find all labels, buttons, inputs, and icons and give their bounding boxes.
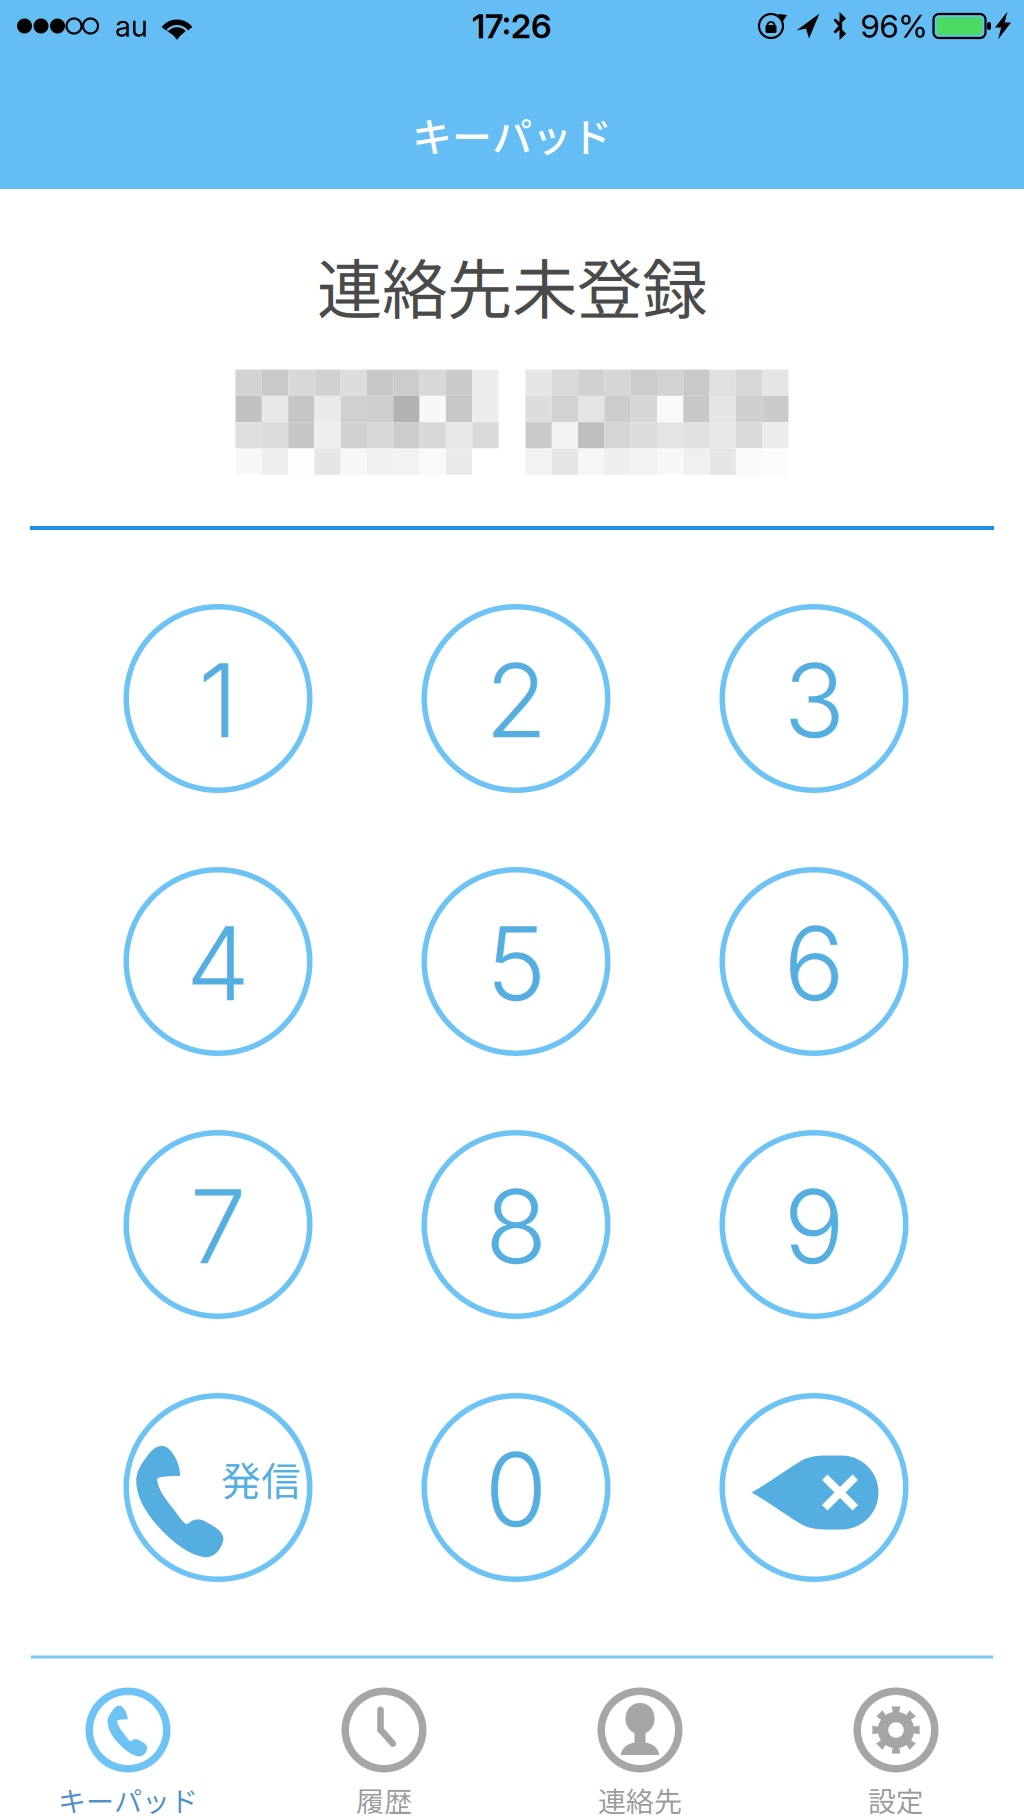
staticText: 6 (783, 902, 844, 1025)
staticText: キーパッド (58, 1779, 198, 1820)
staticText: 設定 (868, 1779, 924, 1820)
button[interactable]: 0 (421, 1393, 610, 1582)
button[interactable]: 削除 (719, 1393, 908, 1582)
staticText: 8 (485, 1165, 547, 1288)
staticText: 2 (485, 639, 547, 762)
staticText: 3 (783, 639, 844, 762)
button[interactable]: 履歴 (256, 1658, 512, 1820)
staticText: 連絡先未登録 (317, 238, 707, 333)
staticText: 5 (486, 902, 546, 1025)
staticText: 9 (783, 1165, 844, 1288)
button[interactable]: 1 (123, 604, 312, 793)
staticText: 96% (860, 7, 927, 45)
staticText: 発信 (221, 1449, 301, 1507)
button[interactable]: 7 (123, 1130, 312, 1319)
button[interactable]: 発信 (123, 1393, 312, 1582)
button[interactable]: 連絡先 (512, 1658, 768, 1820)
button[interactable]: 9 (719, 1130, 908, 1319)
staticText: 1 (198, 639, 238, 762)
staticText: 履歴 (356, 1779, 412, 1820)
button[interactable]: 4 (123, 867, 312, 1056)
staticText: 7 (189, 1165, 246, 1288)
button[interactable]: 3 (719, 604, 908, 793)
button[interactable]: 6 (719, 867, 908, 1056)
staticText: 4 (186, 902, 250, 1025)
button[interactable]: 8 (421, 1130, 610, 1319)
button[interactable]: 5 (421, 867, 610, 1056)
button[interactable]: 2 (421, 604, 610, 793)
button[interactable]: キーパッド (0, 1658, 256, 1820)
staticText: 0 (484, 1428, 547, 1551)
staticText: 連絡先 (598, 1779, 682, 1820)
staticText: au (115, 8, 148, 44)
staticText: 17:26 (472, 6, 552, 46)
staticText: キーパッド (412, 105, 612, 163)
button[interactable]: 設定 (768, 1658, 1024, 1820)
